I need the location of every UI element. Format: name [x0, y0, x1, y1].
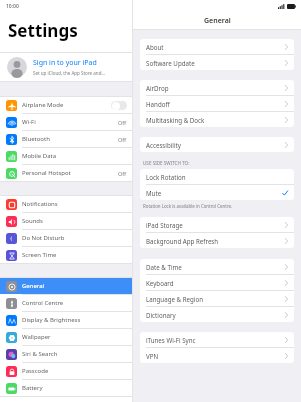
button[interactable]: Airplane Mode [0, 97, 132, 113]
button[interactable]: AirDrop [140, 80, 294, 95]
button[interactable]: Mobile Data [0, 148, 132, 164]
button[interactable]: Airplane Mode toggle [111, 101, 127, 110]
staticText: Mute [146, 189, 282, 197]
staticText: Screen Time [22, 251, 127, 259]
staticText: Set up iCloud, the App Store and… [33, 70, 105, 76]
staticText: General [204, 16, 231, 26]
staticText: Rotation Lock is available in Control Ce… [143, 203, 233, 209]
staticText: Date & Time [146, 263, 285, 271]
staticText: Dictionary [146, 311, 285, 319]
staticText: Background App Refresh [146, 237, 285, 245]
button[interactable]: VPN [140, 348, 294, 363]
button[interactable]: Software Update [140, 55, 294, 70]
button[interactable]: Personal Hotspot [0, 165, 132, 181]
button[interactable]: Mute [140, 185, 294, 200]
button[interactable]: Lock Rotation [140, 169, 294, 184]
staticText: About [146, 43, 285, 51]
button[interactable]: About [140, 39, 294, 54]
staticText: VPN [146, 352, 285, 360]
staticText: Wi-Fi [22, 118, 118, 126]
staticText: Control Centre [22, 299, 127, 307]
staticText: Keyboard [146, 279, 285, 287]
button[interactable]: Wallpaper [0, 329, 132, 345]
button[interactable]: iPad Storage [140, 217, 294, 232]
staticText: Multitasking & Dock [146, 116, 285, 124]
staticText: General [22, 282, 127, 290]
staticText: Accessibility [146, 141, 285, 149]
button[interactable]: Bluetooth [0, 131, 132, 147]
button[interactable]: Control Centre [0, 295, 132, 311]
staticText: Notifications [22, 200, 127, 208]
button[interactable]: Dictionary [140, 307, 294, 322]
button[interactable]: Display & Brightness [0, 312, 132, 328]
button[interactable]: Sign in to your iPad [0, 53, 132, 81]
staticText: AirDrop [146, 84, 285, 92]
staticText: 10:00 [6, 3, 19, 10]
staticText: USE SIDE SWITCH TO: [143, 160, 190, 166]
staticText: Off [118, 170, 127, 177]
button[interactable]: General [0, 278, 132, 294]
button[interactable]: Sounds [0, 213, 132, 229]
staticText: Airplane Mode [22, 101, 111, 109]
staticText: Handoff [146, 100, 285, 108]
staticText: Personal Hotspot [22, 169, 118, 177]
staticText: Language & Region [146, 295, 285, 303]
button[interactable]: iTunes Wi-Fi Sync [140, 332, 294, 347]
button[interactable]: Handoff [140, 96, 294, 111]
staticText: Sounds [22, 217, 127, 225]
staticText: Battery [22, 384, 127, 392]
button[interactable]: Background App Refresh [140, 233, 294, 248]
staticText: Sign in to your iPad [33, 58, 97, 68]
staticText: iPad Storage [146, 221, 285, 229]
staticText: Off [118, 136, 127, 143]
staticText: Lock Rotation [146, 173, 288, 181]
staticText: Passcode [22, 367, 127, 375]
staticText: Siri & Search [22, 350, 127, 358]
staticText: iTunes Wi-Fi Sync [146, 336, 285, 344]
staticText: Settings [8, 19, 78, 42]
staticText: Wallpaper [22, 333, 127, 341]
button[interactable]: Wi-Fi [0, 114, 132, 130]
staticText: Software Update [146, 59, 285, 67]
staticText: Bluetooth [22, 135, 118, 143]
button[interactable]: Screen Time [0, 247, 132, 263]
staticText: Mobile Data [22, 152, 127, 160]
button[interactable]: Passcode [0, 363, 132, 379]
staticText: Off [118, 119, 127, 126]
button[interactable]: Multitasking & Dock [140, 112, 294, 127]
button[interactable]: Date & Time [140, 259, 294, 274]
button[interactable]: Accessibility [140, 137, 294, 152]
button[interactable]: Notifications [0, 196, 132, 212]
staticText: Do Not Disturb [22, 234, 127, 242]
button[interactable]: Battery [0, 380, 132, 396]
button[interactable]: Language & Region [140, 291, 294, 306]
button[interactable]: Siri & Search [0, 346, 132, 362]
staticText: Display & Brightness [22, 316, 127, 324]
button[interactable]: Do Not Disturb [0, 230, 132, 246]
button[interactable]: Keyboard [140, 275, 294, 290]
